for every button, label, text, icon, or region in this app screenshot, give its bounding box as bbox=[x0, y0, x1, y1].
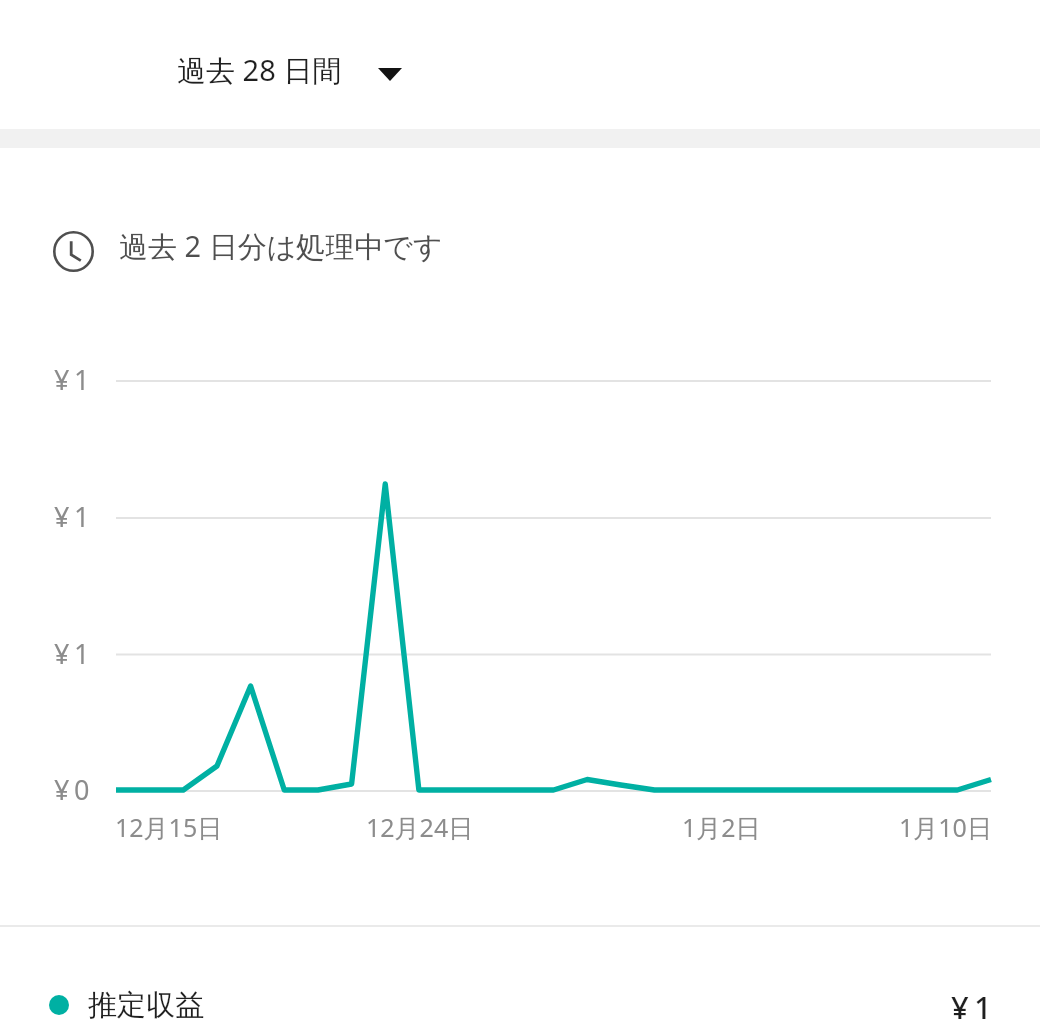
staticText: ¥ 1 bbox=[951, 986, 992, 1024]
other: Data still processing bbox=[53, 231, 94, 272]
staticText: 過去 2 日分は処理中です bbox=[119, 226, 443, 266]
staticText: 12月15日 bbox=[115, 810, 223, 844]
staticText: 12月24日 bbox=[366, 810, 474, 844]
staticText: 1月10日 bbox=[899, 810, 992, 844]
staticText: 1月2日 bbox=[682, 810, 761, 844]
staticText: ¥ 1 bbox=[54, 361, 90, 398]
button[interactable]: 過去 28 日間 bbox=[161, 42, 418, 98]
button[interactable]: 推定収益 bbox=[0, 986, 1040, 1024]
other: Estimated earnings chart bbox=[0, 0, 1040, 1024]
staticText: ¥ 1 bbox=[54, 498, 90, 535]
staticText: 推定収益 bbox=[88, 987, 204, 1024]
staticText: ¥ 1 bbox=[54, 635, 90, 672]
staticText: 過去 28 日間 bbox=[177, 50, 342, 90]
staticText: ¥ 0 bbox=[54, 771, 90, 808]
